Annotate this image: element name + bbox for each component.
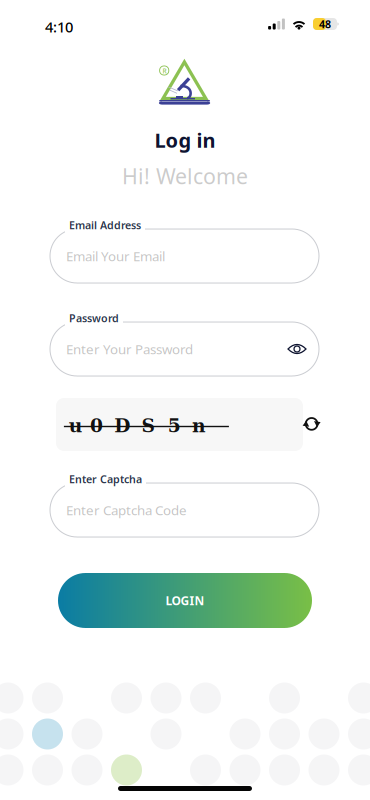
staticText: S xyxy=(141,415,154,437)
staticText: 5 xyxy=(168,415,181,437)
staticText: 4:10 xyxy=(45,17,73,36)
staticText: R xyxy=(162,66,166,75)
staticText: LOGIN xyxy=(165,592,204,608)
staticText: Email Address xyxy=(69,218,141,232)
button[interactable]: Enter Your Password xyxy=(50,314,319,376)
button[interactable]: Refresh captcha xyxy=(294,406,330,442)
staticText: D xyxy=(114,415,130,437)
staticText: Email Your Email xyxy=(66,247,165,265)
staticText: Enter Your Password xyxy=(66,340,193,358)
button[interactable]: Email Your Email xyxy=(50,221,319,283)
staticText: 48 xyxy=(319,17,331,31)
staticText: n xyxy=(192,415,206,437)
staticText: Hi! Welcome xyxy=(122,162,248,190)
staticText: u xyxy=(69,415,83,437)
staticText: Password xyxy=(69,311,119,325)
staticText: 0 xyxy=(90,415,103,437)
staticText: Enter Captcha Code xyxy=(66,501,187,519)
staticText: Log in xyxy=(154,127,215,153)
button[interactable]: Enter Captcha Code xyxy=(50,475,319,537)
staticText: Enter Captcha xyxy=(69,472,142,486)
button[interactable]: LOGIN xyxy=(58,573,312,628)
